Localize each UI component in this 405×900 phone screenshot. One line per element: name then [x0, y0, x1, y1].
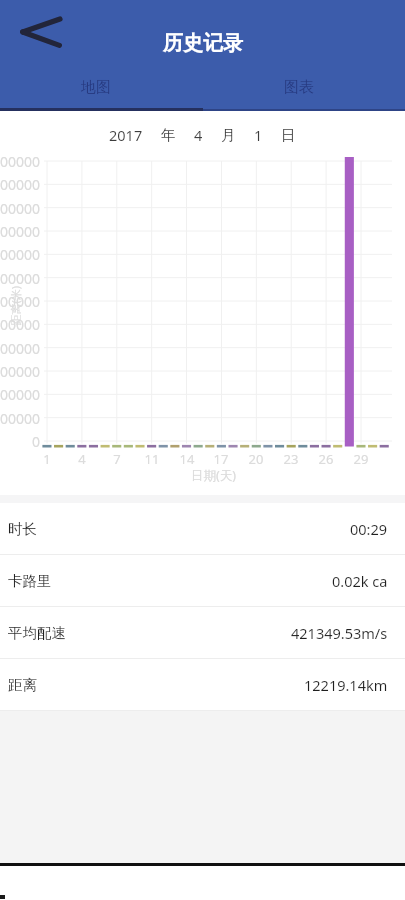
staticText: 1 [254, 125, 263, 145]
staticText: 距离(米) [7, 285, 22, 325]
staticText: 时长 [8, 520, 37, 538]
staticText: 14 [172, 450, 202, 468]
staticText: 8000000 [0, 245, 40, 264]
staticText: 11000000 [0, 175, 40, 194]
staticText: 1000000 [0, 409, 40, 428]
staticText: 图表 [284, 78, 314, 97]
staticText: 00:29 [350, 519, 388, 539]
button[interactable]: 时长 [0, 503, 405, 554]
staticText: 月 [221, 126, 236, 144]
staticText: 0 [0, 432, 40, 451]
button[interactable]: Back [8, 6, 74, 62]
staticText: 421349.53m/s [291, 623, 388, 643]
staticText: 12000000 [0, 152, 40, 171]
staticText: 23 [276, 450, 306, 468]
button[interactable]: 地图 [0, 70, 202, 104]
staticText: 历史记录 [163, 31, 243, 56]
staticText: 10000000 [0, 199, 40, 218]
staticText: 地图 [81, 78, 111, 97]
staticText: 0.02k ca [332, 571, 388, 591]
staticText: 4 [67, 450, 97, 468]
staticText: 日 [281, 126, 296, 144]
staticText: 12219.14km [304, 675, 388, 695]
staticText: 平均配速 [8, 624, 66, 642]
staticText: 9000000 [0, 222, 40, 241]
button[interactable]: 卡路里 [0, 555, 405, 606]
button[interactable]: 图表 [202, 70, 405, 104]
staticText: 5000000 [0, 315, 40, 334]
staticText: 7 [102, 450, 132, 468]
staticText: 20 [241, 450, 271, 468]
staticText: 日期(天) [191, 467, 237, 484]
staticText: 11 [137, 450, 167, 468]
staticText: 1 [32, 450, 62, 468]
staticText: 6000000 [0, 292, 40, 311]
staticText: 距离 [8, 676, 37, 694]
staticText: 4000000 [0, 339, 40, 358]
staticText: 17 [206, 450, 236, 468]
staticText: 卡路里 [8, 572, 52, 590]
button[interactable]: 距离 [0, 659, 405, 710]
button[interactable]: 平均配速 [0, 607, 405, 658]
staticText: 3000000 [0, 362, 40, 381]
staticText: 26 [311, 450, 341, 468]
staticText: 2000000 [0, 385, 40, 404]
staticText: 7000000 [0, 269, 40, 288]
staticText: 2017 [109, 125, 143, 145]
staticText: 4 [194, 125, 203, 145]
staticText: 年 [161, 126, 176, 144]
staticText: 29 [346, 450, 376, 468]
